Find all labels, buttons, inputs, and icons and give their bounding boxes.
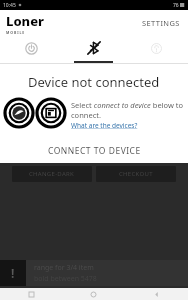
staticText: 76	[173, 2, 179, 9]
button[interactable]: Home	[62, 288, 125, 300]
button[interactable]: Loner device	[4, 98, 34, 128]
button[interactable]: Recent apps	[0, 288, 62, 300]
staticText: bold between 5478	[34, 274, 97, 284]
button[interactable]: CHECKOUT	[96, 166, 176, 182]
button[interactable]: Back	[125, 288, 188, 300]
staticText: CHECKOUT	[119, 170, 153, 178]
button[interactable]: SETTINGS	[134, 12, 188, 34]
button[interactable]: CHANGE-DARK	[12, 166, 92, 182]
staticText: 10:45	[3, 2, 16, 9]
staticText: SETTINGS	[142, 18, 180, 28]
staticText: !	[11, 265, 15, 281]
button[interactable]: Bridge device	[36, 98, 66, 128]
staticText: Loner	[6, 12, 44, 30]
button[interactable]: Bluetooth connection	[62, 36, 125, 60]
staticText: What are the devices?	[71, 121, 138, 130]
staticText: Select connect to device below to connec…	[71, 100, 184, 120]
staticText: CHANGE-DARK	[29, 170, 75, 178]
staticText: CONNECT TO DEVICE	[48, 145, 141, 157]
button[interactable]: Loner	[6, 12, 44, 35]
button[interactable]: What are the devices?	[71, 121, 138, 130]
staticText: Device not connected	[28, 73, 160, 91]
button[interactable]: Power status	[0, 36, 62, 60]
button[interactable]: CONNECT TO DEVICE	[0, 138, 188, 163]
staticText: range for 3/4 item	[34, 263, 94, 273]
staticText: M O B I L E	[6, 30, 25, 35]
